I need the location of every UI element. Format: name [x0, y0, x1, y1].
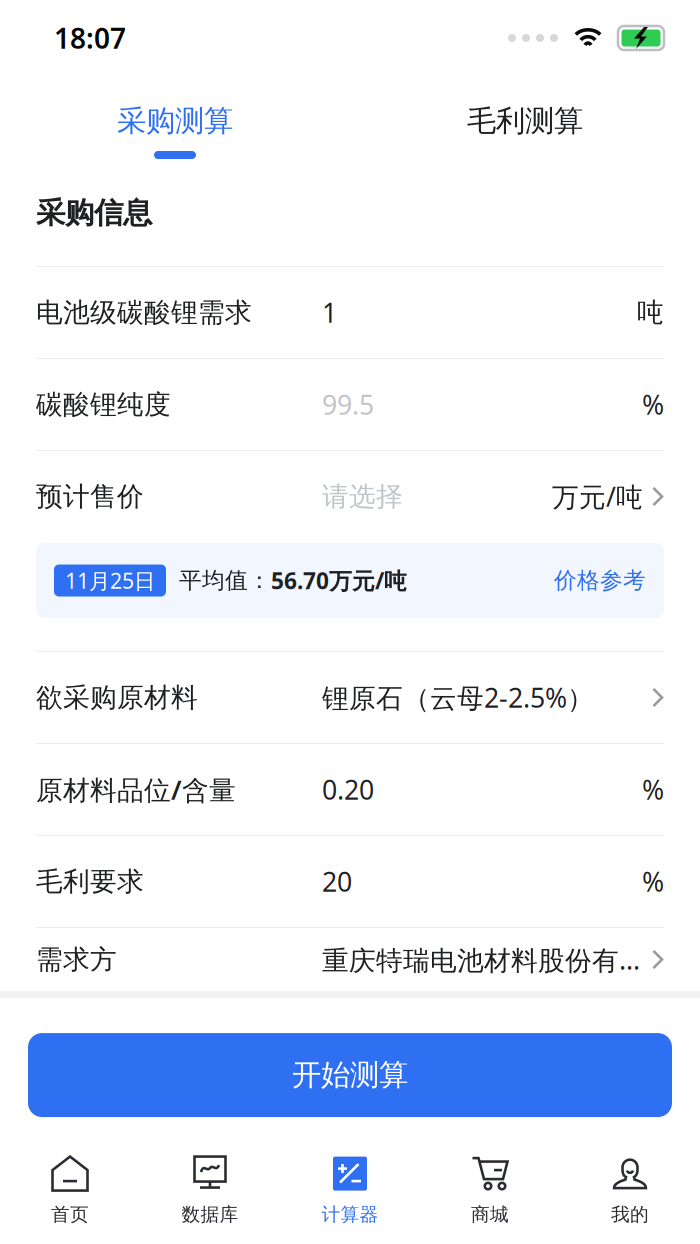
staticText: 20	[322, 864, 352, 899]
staticText: 商城	[471, 1203, 509, 1226]
staticText: 价格参考	[554, 567, 646, 594]
staticText: 数据库	[181, 1203, 238, 1226]
button[interactable]: 采购测算	[0, 104, 350, 159]
button[interactable]: 毛利测算	[350, 104, 700, 159]
staticText: 采购测算	[117, 103, 233, 139]
staticText: %	[642, 864, 664, 899]
staticText: 首页	[51, 1203, 89, 1226]
staticText: 计算器	[321, 1203, 378, 1226]
button[interactable]: 需求方	[36, 927, 664, 991]
staticText: 万元/吨	[552, 479, 643, 514]
staticText: 平均值：	[179, 567, 271, 594]
staticText: 99.5	[322, 387, 374, 422]
staticText: 碳酸锂纯度	[36, 388, 171, 421]
staticText: 毛利测算	[467, 103, 583, 139]
button[interactable]: 碳酸锂纯度	[36, 358, 664, 450]
button[interactable]: 开始测算	[28, 1033, 672, 1117]
button[interactable]: 预计售价	[36, 450, 664, 542]
staticText: 开始测算	[292, 1057, 408, 1093]
button[interactable]: 首页	[0, 1155, 140, 1226]
button[interactable]: 我的	[560, 1155, 700, 1226]
staticText: 采购信息	[36, 195, 152, 231]
staticText: 预计售价	[36, 480, 144, 513]
staticText: 吨	[637, 296, 664, 329]
button[interactable]: 电池级碳酸锂需求	[36, 266, 664, 358]
staticText: 11月25日	[65, 566, 155, 595]
button[interactable]: 欲采购原材料	[36, 651, 664, 743]
staticText: 欲采购原材料	[36, 681, 198, 714]
staticText: 请选择	[322, 480, 403, 513]
button[interactable]: 商城	[420, 1155, 560, 1226]
button[interactable]: 计算器	[280, 1155, 420, 1226]
staticText: 我的	[611, 1203, 649, 1226]
staticText: 18:07	[54, 19, 126, 57]
staticText: 重庆特瑞电池材料股份有阝	[322, 942, 643, 977]
staticText: 56.70万元/吨	[271, 565, 407, 595]
staticText: %	[642, 772, 664, 807]
staticText: 0.20	[322, 772, 374, 807]
staticText: 锂原石（云母2-2.5%）	[322, 680, 594, 715]
button[interactable]: 原材料品位/含量	[36, 743, 664, 835]
staticText: 需求方	[36, 943, 117, 976]
button[interactable]: 数据库	[140, 1155, 280, 1226]
staticText: 毛利要求	[36, 865, 144, 898]
staticText: %	[642, 387, 664, 422]
button[interactable]: 毛利要求	[36, 835, 664, 927]
staticText: 1	[322, 295, 337, 330]
button[interactable]: 价格参考	[554, 567, 646, 594]
staticText: 原材料品位/含量	[36, 772, 236, 807]
staticText: 电池级碳酸锂需求	[36, 296, 252, 329]
